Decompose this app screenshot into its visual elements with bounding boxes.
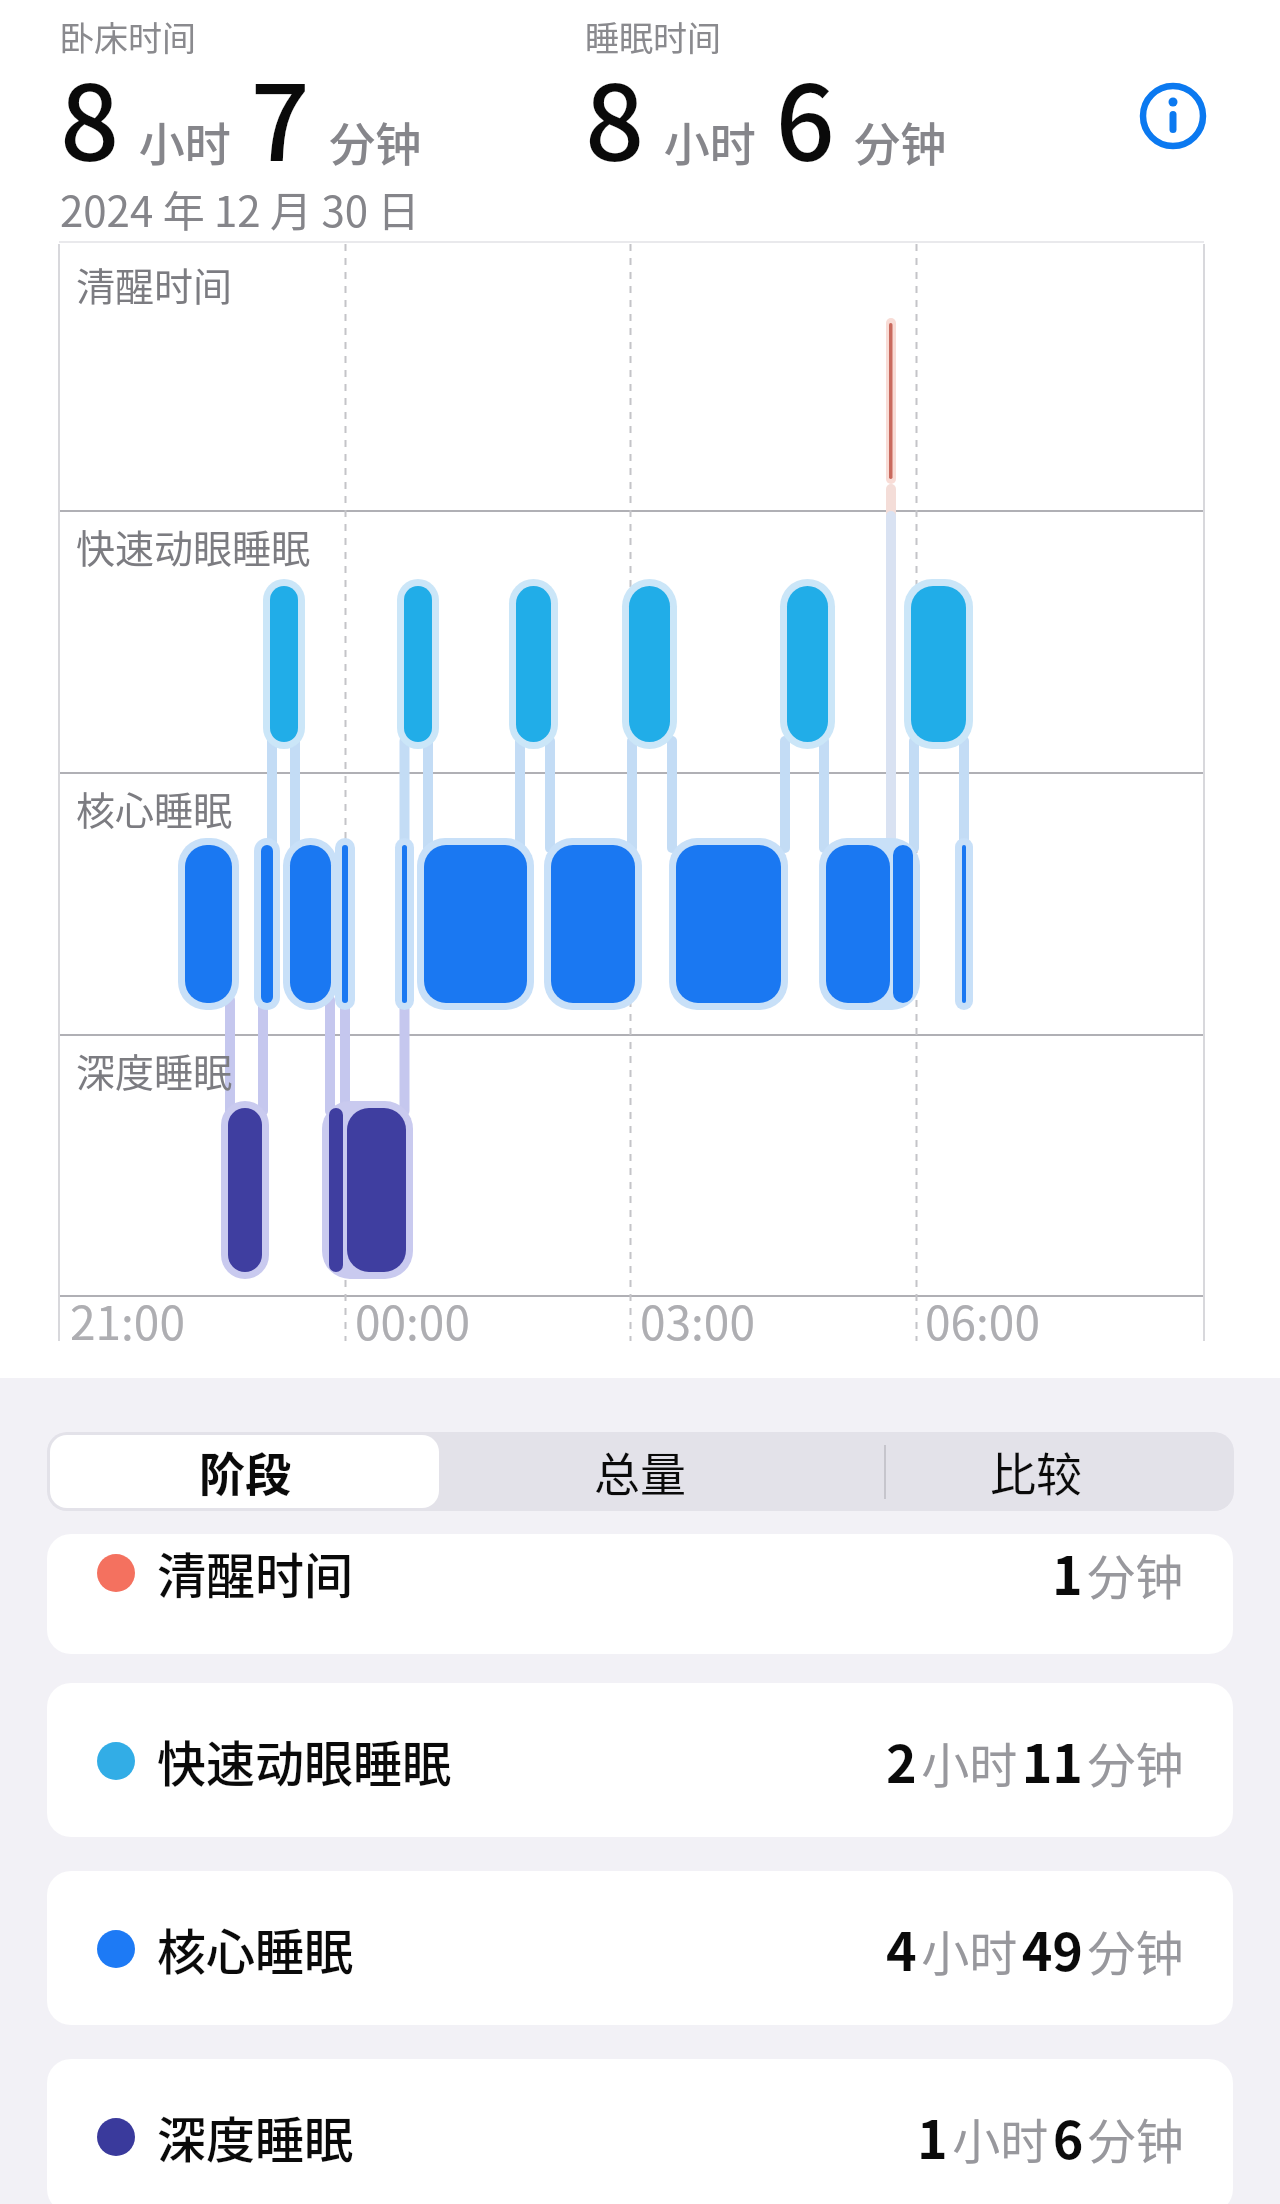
staticText: 03:00 [640, 1287, 755, 1354]
staticText: 总量 [594, 1438, 686, 1505]
staticText: 21:00 [70, 1287, 185, 1354]
staticText: 快速动眼睡眠 [157, 1725, 452, 1796]
staticText: 8 小时 7 分钟 [60, 40, 422, 191]
staticText: 核心睡眠 [76, 780, 233, 836]
staticText: 清醒时间 [157, 1537, 354, 1608]
staticText: 核心睡眠 [157, 1913, 354, 1984]
button[interactable] [1130, 73, 1216, 159]
button[interactable]: 总量 [442, 1432, 838, 1511]
staticText: 8 小时 6 分钟 [585, 40, 947, 191]
button[interactable]: 比较 [838, 1432, 1234, 1511]
staticText: 00:00 [355, 1287, 470, 1354]
button[interactable]: 快速动眼睡眠 [47, 1683, 1233, 1837]
button[interactable]: 核心睡眠 [47, 1871, 1233, 2025]
staticText: 06:00 [925, 1287, 1040, 1354]
staticText: 快速动眼睡眠 [76, 518, 311, 574]
button[interactable]: 阶段 [50, 1435, 439, 1508]
staticText: 1 分钟 [1052, 1535, 1184, 1610]
staticText: 深度睡眠 [157, 2101, 354, 2172]
staticText: 2 小时 11 分钟 [886, 1723, 1184, 1798]
staticText: 2024 年 12 月 30 日 [60, 178, 420, 239]
button[interactable]: 清醒时间 [47, 1534, 1233, 1654]
staticText: 1 小时 6 分钟 [917, 2099, 1184, 2174]
staticText: 清醒时间 [76, 256, 233, 312]
staticText: 睡眠时间 [585, 12, 721, 61]
staticText: 卧床时间 [60, 12, 196, 61]
button[interactable]: 深度睡眠 [47, 2059, 1233, 2204]
staticText: 深度睡眠 [76, 1042, 233, 1098]
staticText: 4 小时 49 分钟 [886, 1911, 1184, 1986]
staticText: 阶段 [199, 1438, 291, 1505]
staticText: 比较 [990, 1438, 1082, 1505]
